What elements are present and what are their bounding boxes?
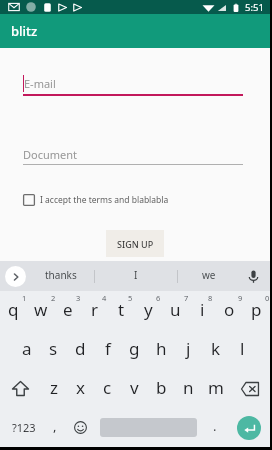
staticText: j [186,337,191,360]
button[interactable]: d [67,330,94,369]
button[interactable]: z [40,369,67,408]
staticText: 3 [76,293,81,303]
button[interactable]: Shift [0,369,40,408]
button[interactable]: q [0,291,27,330]
staticText: thanks [45,268,77,282]
button[interactable]: , [44,408,66,447]
button[interactable]: Enter [237,416,261,440]
staticText: SIGN UP [117,238,154,250]
staticText: , [53,417,57,435]
button[interactable]: n [175,369,202,408]
staticText: d [75,337,86,360]
staticText: a [22,337,32,360]
button[interactable]: Emoji [68,408,92,447]
button[interactable]: l [229,330,256,369]
button[interactable]: ?123 [2,408,46,447]
button[interactable]: e [54,291,81,330]
button[interactable]: h [148,330,175,369]
staticText: E-mail [24,76,56,91]
staticText: u [170,298,181,321]
button[interactable]: Space [96,408,201,447]
staticText: n [183,376,194,399]
staticText: p [251,298,262,321]
staticText: w [34,298,48,321]
staticText: Document [23,147,78,162]
staticText: 9 [238,293,243,303]
staticText: i [200,298,205,321]
staticText: c [103,376,112,399]
staticText: y [144,298,153,321]
staticText: q [8,298,19,321]
staticText: g [129,337,140,360]
staticText: h [156,337,167,360]
button[interactable]: t [108,291,135,330]
button[interactable]: g [121,330,148,369]
button[interactable]: I [95,261,177,291]
staticText: t [118,298,125,321]
button[interactable]: I accept the terms and blablabla [23,194,169,206]
button[interactable]: b [148,369,175,408]
staticText: k [211,337,221,360]
staticText: we [202,268,216,282]
staticText: blitz [11,22,38,40]
staticText: 0 [265,293,270,303]
staticText: s [49,337,58,360]
button[interactable]: w [27,291,54,330]
staticText: 7 [184,293,189,303]
button[interactable]: y [135,291,162,330]
staticText: I accept the terms and blablabla [40,194,169,206]
staticText: 2 [51,293,56,303]
button[interactable]: v [121,369,148,408]
staticText: o [224,298,235,321]
staticText: 6 [156,293,161,303]
button[interactable]: j [175,330,202,369]
button[interactable]: s [40,330,67,369]
staticText: f [105,337,111,360]
staticText: e [63,298,73,321]
button[interactable]: Expand suggestions [5,266,26,287]
staticText: x [76,376,85,399]
staticText: 5 [128,293,133,303]
staticText: 8 [208,293,213,303]
staticText: v [130,376,139,399]
button[interactable]: a [13,330,40,369]
button[interactable]: k [202,330,229,369]
staticText: I [134,268,138,282]
staticText: 5:51 [245,1,264,14]
button[interactable]: c [94,369,121,408]
staticText: m [208,376,224,399]
button[interactable]: r [81,291,108,330]
staticText: ?123 [12,420,36,435]
button[interactable]: p [243,291,270,330]
button[interactable]: Backspace [229,369,270,408]
button[interactable]: o [216,291,243,330]
staticText: 4 [102,293,107,303]
staticText: z [50,376,58,399]
button[interactable]: x [67,369,94,408]
button[interactable]: m [202,369,229,408]
button[interactable]: Voice input [246,269,261,284]
staticText: l [240,337,245,360]
button[interactable]: we [178,261,240,291]
button[interactable]: . [204,408,226,447]
staticText: r [91,298,99,321]
button[interactable]: f [94,330,121,369]
button[interactable]: i [189,291,216,330]
button[interactable]: SIGN UP [106,230,164,257]
button[interactable]: u [162,291,189,330]
staticText: b [156,376,167,399]
staticText: . [213,417,217,435]
staticText: 1 [22,293,27,303]
button[interactable]: thanks [28,261,94,291]
